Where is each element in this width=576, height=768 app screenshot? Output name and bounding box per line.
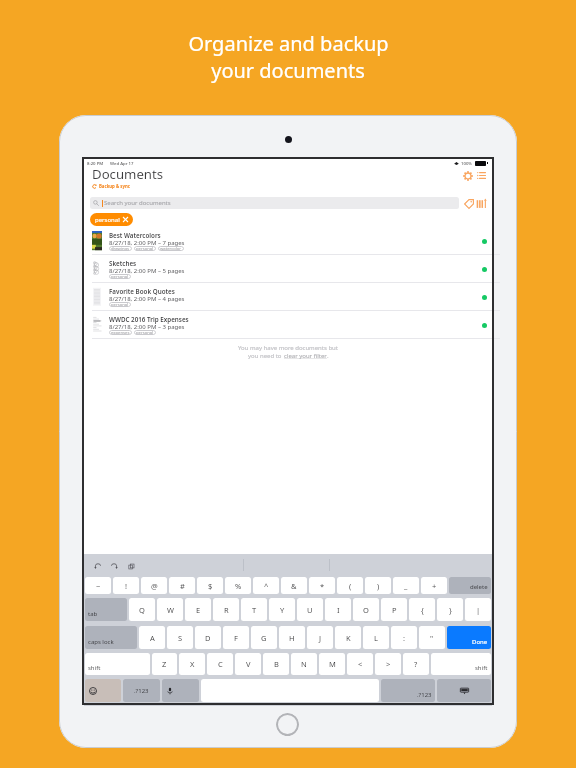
button[interactable]: ! <box>113 577 139 594</box>
staticText: J <box>319 633 322 643</box>
button[interactable]: Best Watercolors <box>84 227 492 255</box>
staticText: M <box>329 659 336 669</box>
staticText: > <box>386 659 391 669</box>
staticText: delete <box>470 583 488 591</box>
button[interactable]: Q <box>129 598 155 621</box>
button[interactable]: delete <box>449 577 491 594</box>
staticText: C <box>218 659 223 669</box>
staticText: personal <box>111 274 129 279</box>
button[interactable]: H <box>279 626 305 649</box>
button[interactable]: ~ <box>85 577 111 594</box>
button[interactable]: O <box>353 598 379 621</box>
button[interactable]: # <box>169 577 195 594</box>
button[interactable]: U <box>297 598 323 621</box>
staticText: shift <box>475 664 488 672</box>
button[interactable]: + <box>421 577 447 594</box>
button[interactable]: List view <box>475 169 488 182</box>
button[interactable]: E <box>185 598 211 621</box>
button[interactable]: .?123 <box>381 679 435 702</box>
button[interactable] <box>85 679 121 702</box>
button[interactable]: { <box>409 598 435 621</box>
staticText: Q <box>139 605 145 615</box>
button[interactable]: .?123 <box>123 679 160 702</box>
button[interactable]: Z <box>152 653 177 675</box>
button[interactable]: A <box>139 626 165 649</box>
button[interactable]: " <box>419 626 445 649</box>
button[interactable]: Sort <box>475 197 488 210</box>
button[interactable]: Done <box>447 626 491 649</box>
button[interactable]: S <box>167 626 193 649</box>
button[interactable]: WWDC 2016 Trip Expenses <box>84 311 492 339</box>
staticText: personal <box>95 216 120 224</box>
staticText: Wed Apr 17 <box>110 160 134 166</box>
staticText: O <box>363 605 369 615</box>
staticText: ) <box>377 581 380 591</box>
button[interactable]: Tags <box>462 197 475 210</box>
button[interactable]: D <box>195 626 221 649</box>
button[interactable]: J <box>307 626 333 649</box>
button[interactable]: B <box>263 653 289 675</box>
button[interactable]: Favorite Book Quotes <box>84 283 492 311</box>
button[interactable]: C <box>207 653 233 675</box>
button[interactable]: tab <box>85 598 127 621</box>
button[interactable]: N <box>291 653 317 675</box>
button[interactable]: : <box>391 626 417 649</box>
button[interactable]: shift <box>85 653 150 675</box>
button[interactable]: % <box>225 577 251 594</box>
staticText: personal <box>136 330 154 335</box>
staticText: I <box>337 605 340 615</box>
button[interactable]: personal <box>90 213 133 226</box>
staticText: < <box>358 659 363 669</box>
button[interactable]: & <box>281 577 307 594</box>
button[interactable]: F <box>223 626 249 649</box>
button[interactable]: P <box>381 598 407 621</box>
button[interactable]: } <box>437 598 463 621</box>
button[interactable]: L <box>363 626 389 649</box>
button[interactable]: V <box>235 653 261 675</box>
staticText: W <box>167 605 174 615</box>
button[interactable]: G <box>251 626 277 649</box>
staticText: ( <box>349 581 352 591</box>
button[interactable]: Undo <box>93 561 103 571</box>
button[interactable]: R <box>213 598 239 621</box>
button[interactable]: ) <box>365 577 391 594</box>
staticText: E <box>196 605 201 615</box>
button[interactable]: X <box>179 653 205 675</box>
staticText: Done <box>472 638 488 646</box>
button[interactable]: ^ <box>253 577 279 594</box>
button[interactable]: Paste <box>126 561 136 571</box>
button[interactable]: shift <box>431 653 491 675</box>
button[interactable]: Redo <box>109 561 119 571</box>
staticText: tab <box>88 610 98 618</box>
button[interactable]: T <box>241 598 267 621</box>
button[interactable]: @ <box>141 577 167 594</box>
button[interactable] <box>437 679 491 702</box>
button[interactable]: Sketches <box>84 255 492 283</box>
button[interactable]: $ <box>197 577 223 594</box>
button[interactable]: Settings <box>461 169 474 182</box>
button[interactable]: ? <box>403 653 429 675</box>
button[interactable]: Y <box>269 598 295 621</box>
button[interactable]: < <box>347 653 373 675</box>
button[interactable]: W <box>157 598 183 621</box>
staticText: G <box>261 633 267 643</box>
button[interactable]: I <box>325 598 351 621</box>
staticText: : <box>403 633 406 643</box>
staticText: personal <box>111 302 129 307</box>
button[interactable] <box>162 679 199 702</box>
button[interactable]: caps lock <box>85 626 137 649</box>
button[interactable]: ( <box>337 577 363 594</box>
staticText: 8/27/18, 2:00 PM – 4 pages <box>109 295 185 303</box>
button[interactable]: K <box>335 626 361 649</box>
button[interactable]: Search your documents <box>90 197 459 209</box>
staticText: # <box>180 581 185 591</box>
button[interactable]: M <box>319 653 345 675</box>
staticText: personal <box>136 246 154 251</box>
button[interactable]: * <box>309 577 335 594</box>
button[interactable]: _ <box>393 577 419 594</box>
button[interactable]: > <box>375 653 401 675</box>
staticText: ^ <box>264 581 269 591</box>
staticText: B <box>274 659 279 669</box>
button[interactable]: | <box>465 598 491 621</box>
